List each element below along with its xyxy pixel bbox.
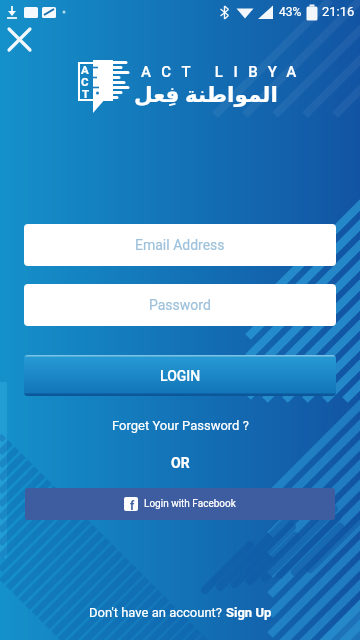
staticText: LOGIN <box>160 368 201 384</box>
staticText: Login with Facebook <box>144 498 236 510</box>
staticText: Password <box>149 297 211 313</box>
staticText: T <box>82 87 90 100</box>
button[interactable]: f <box>25 488 335 520</box>
button[interactable]: LOGIN <box>24 355 336 396</box>
staticText: C <box>81 75 89 88</box>
staticText: 43% <box>279 5 302 19</box>
staticText: Forget Your Password ? <box>112 418 249 433</box>
button[interactable] <box>4 24 36 56</box>
staticText: OR <box>171 455 190 471</box>
staticText: Sign Up <box>226 605 272 620</box>
staticText: A <box>81 63 89 76</box>
staticText: Email Address <box>135 237 225 253</box>
button[interactable]: Forget Your Password ? <box>0 414 360 436</box>
button[interactable]: Sign Up <box>226 605 272 620</box>
staticText: 21:16 <box>322 4 355 19</box>
button[interactable]: Email Address <box>24 224 336 266</box>
staticText: المواطنة فِعل <box>134 79 278 108</box>
staticText: Don't have an account? <box>89 605 226 620</box>
staticText: ACT LIBYA <box>141 63 307 81</box>
staticText: f <box>130 499 135 511</box>
button[interactable]: Password <box>24 284 336 326</box>
